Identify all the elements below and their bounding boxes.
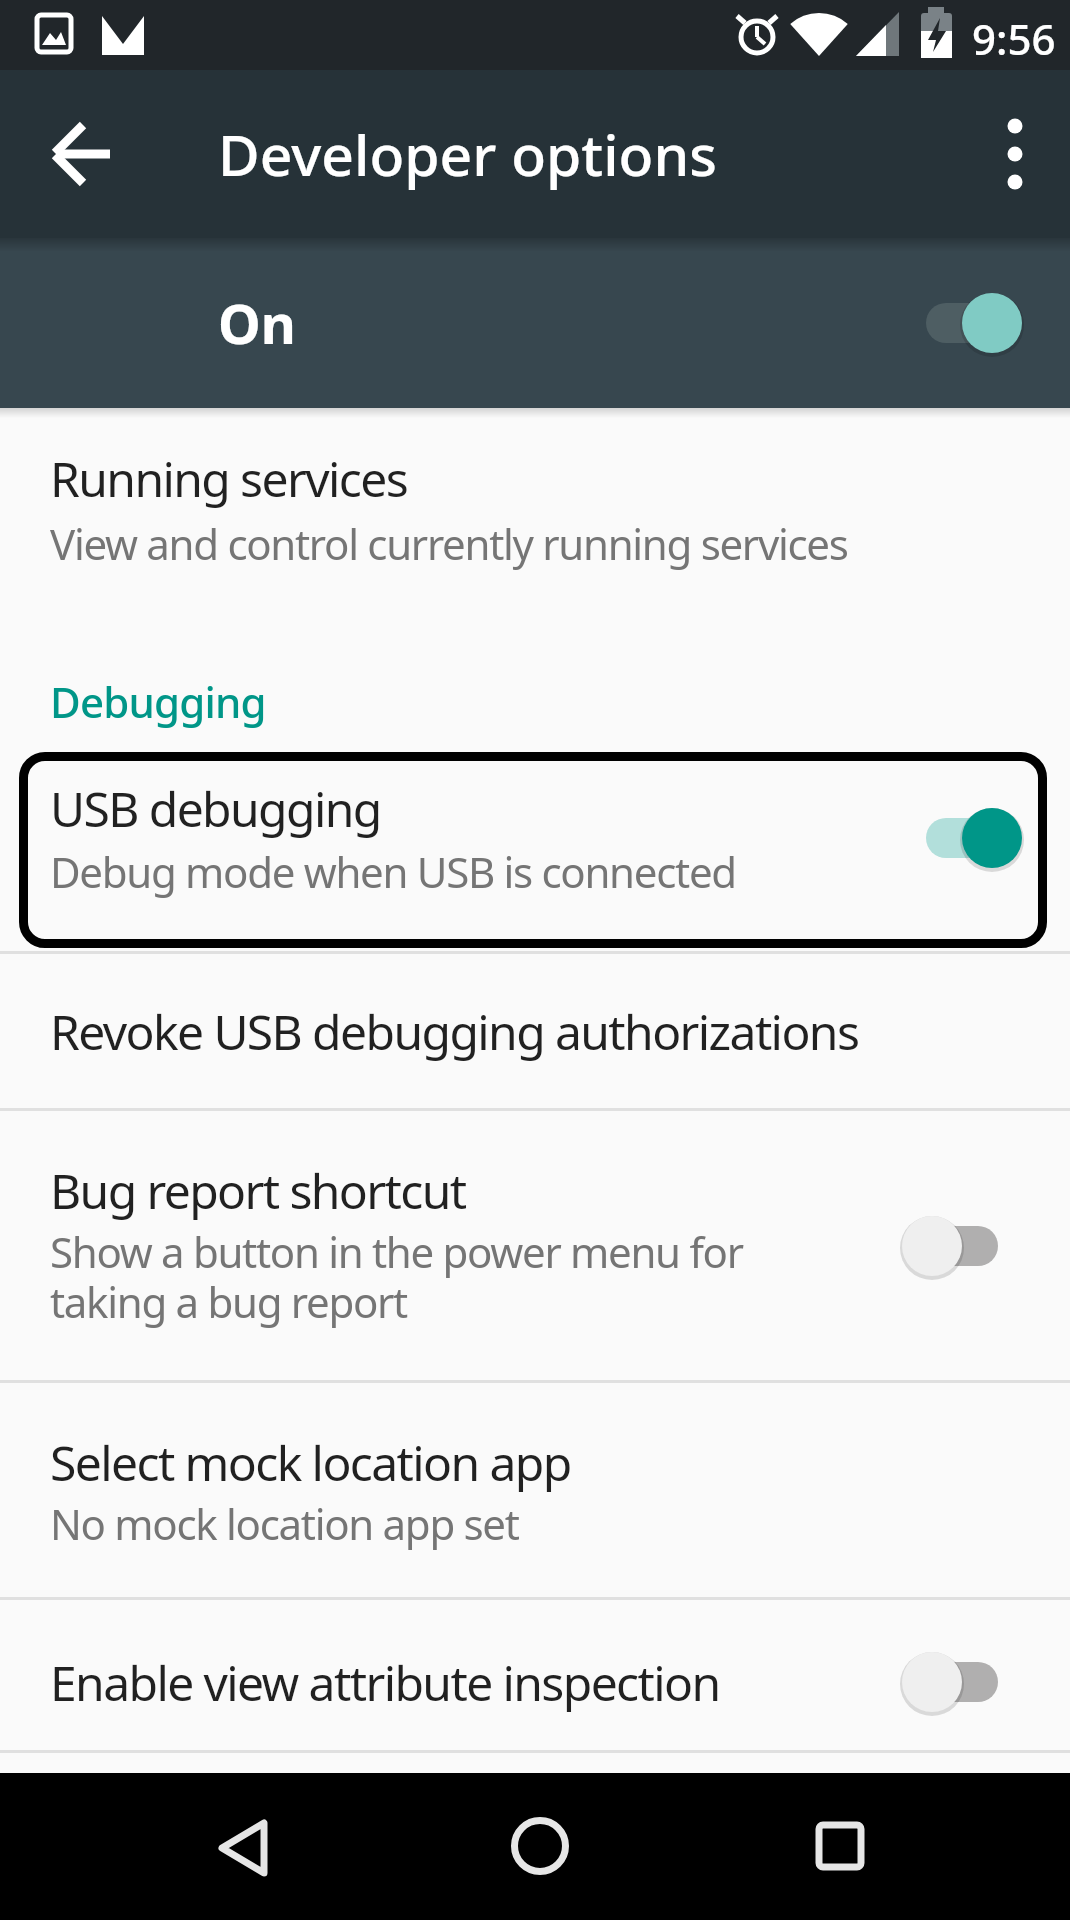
button[interactable]: Running services: [0, 408, 1070, 632]
button[interactable]: [480, 1792, 590, 1902]
staticText: Running services: [50, 446, 408, 511]
staticText: 9:56: [972, 10, 1056, 67]
staticText: On: [218, 286, 296, 360]
button[interactable]: Bug report shortcut: [0, 1111, 1070, 1380]
button[interactable]: [902, 293, 1022, 353]
button[interactable]: Enable view attribute inspection: [0, 1600, 1070, 1750]
button[interactable]: [902, 1652, 1022, 1712]
staticText: Revoke USB debugging authorizations: [50, 999, 859, 1064]
button[interactable]: [190, 1792, 300, 1902]
button[interactable]: [902, 808, 1022, 868]
staticText: Debug mode when USB is connected: [50, 843, 736, 900]
button[interactable]: [40, 109, 130, 199]
button[interactable]: USB debugging: [19, 752, 1047, 948]
button[interactable]: [902, 1216, 1022, 1276]
button[interactable]: [780, 1792, 890, 1902]
button[interactable]: Select mock location app: [0, 1383, 1070, 1597]
staticText: View and control currently running servi…: [50, 515, 848, 572]
staticText: USB debugging: [50, 776, 381, 841]
staticText: Debugging: [50, 673, 266, 730]
button[interactable]: Revoke USB debugging authorizations: [0, 954, 1070, 1108]
button[interactable]: On: [0, 238, 1070, 408]
button[interactable]: [985, 124, 1045, 184]
staticText: Bug report shortcut: [50, 1158, 466, 1223]
staticText: Select mock location app: [50, 1430, 571, 1495]
staticText: Enable view attribute inspection: [50, 1650, 720, 1715]
staticText: Show a button in the power menu for taki…: [50, 1223, 743, 1331]
staticText: Developer options: [218, 115, 717, 193]
staticText: No mock location app set: [50, 1495, 519, 1552]
